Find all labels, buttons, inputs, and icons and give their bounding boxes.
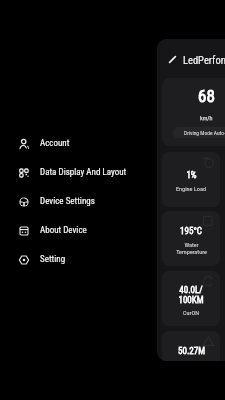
staticText: Setting [40,254,66,265]
button[interactable]: 68 [162,78,225,146]
button[interactable]: About Device [0,216,225,245]
staticText: 68 [198,86,215,106]
staticText: CurON [183,309,199,316]
staticText: km/h [200,114,213,121]
staticText: Data Display And Layout [40,167,127,178]
staticText: Driving Mode Auto-Sport [184,130,225,136]
staticText: 195°C [180,226,202,237]
staticText: Engine Load [176,185,206,192]
staticText: About Device [40,225,87,236]
button[interactable]: Data Display And Layout [0,158,225,187]
staticText: LedPerform [183,54,225,66]
button[interactable]: Edit name [168,53,225,66]
staticText: Account [40,138,70,149]
button[interactable]: 1% [162,152,220,207]
button[interactable]: 40.0L/ 100KM [162,271,220,326]
button[interactable]: Account [0,129,225,158]
button[interactable]: Setting [0,245,225,274]
button[interactable]: Device Settings [0,187,225,216]
button[interactable]: 195°C [162,211,220,266]
staticText: 1% [186,170,197,181]
staticText: Device Settings [40,196,95,207]
other: Edit name [168,55,177,64]
button[interactable]: 50.27M [162,331,220,361]
staticText: 50.27M [178,346,205,357]
staticText: 40.0L/ 100KM [178,285,204,305]
staticText: Water Temperature [176,241,207,255]
